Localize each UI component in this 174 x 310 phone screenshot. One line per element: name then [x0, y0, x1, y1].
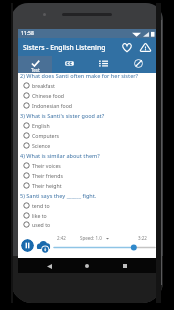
staticText: Speed: 1.0 — [80, 235, 102, 241]
button[interactable]: English — [18, 120, 156, 130]
staticText: 5) Santi says they ______ fight. — [20, 192, 97, 199]
staticText: Their height — [32, 182, 62, 189]
button[interactable]: Test — [18, 56, 52, 73]
button[interactable]: Favorite — [118, 38, 136, 56]
button[interactable]: Science — [18, 140, 156, 150]
button[interactable]: tend to — [18, 200, 156, 210]
staticText: 3:22 — [138, 235, 147, 241]
button[interactable]: Tab — [121, 56, 156, 73]
button[interactable]: Indonesian food — [18, 100, 156, 110]
staticText: like to — [32, 212, 47, 219]
staticText: Their voices — [32, 162, 61, 169]
button[interactable]: Back — [42, 259, 56, 273]
button[interactable]: Chinese food — [18, 90, 156, 100]
staticText: Indonesian food — [32, 102, 72, 109]
button[interactable]: Tab — [52, 56, 86, 73]
staticText: tend to — [32, 202, 50, 209]
staticText: used to — [32, 221, 51, 228]
button[interactable]: Their friends — [18, 170, 156, 180]
staticText: Chinese food — [32, 92, 64, 99]
staticText: 3) What is Santi's sister good at? — [20, 112, 105, 119]
button[interactable]: Their height — [18, 180, 156, 190]
staticText: Test — [31, 67, 40, 73]
staticText: Science — [32, 142, 51, 149]
button[interactable]: Speed: 1.0 — [80, 235, 109, 241]
button[interactable]: Their voices — [18, 160, 156, 170]
staticText: breakfast — [32, 82, 55, 89]
staticText: English — [32, 122, 50, 129]
staticText: 2) What does Santi often make for her si… — [20, 72, 139, 79]
button[interactable]: Computers — [18, 130, 156, 140]
button[interactable]: breakfast — [18, 80, 156, 90]
button[interactable]: Pause — [21, 239, 34, 252]
staticText: Computers — [32, 132, 60, 139]
button[interactable]: Report — [136, 38, 154, 56]
button[interactable]: Home — [80, 259, 94, 273]
button[interactable]: Download — [35, 238, 52, 255]
button[interactable]: used to — [18, 220, 156, 229]
staticText: 4) What is similar about them? — [20, 152, 100, 159]
staticText: 11:58 — [21, 30, 34, 37]
button[interactable]: like to — [18, 210, 156, 220]
staticText: Their friends — [32, 172, 63, 179]
staticText: 2:42 — [57, 235, 66, 241]
button[interactable]: Recents — [118, 259, 132, 273]
staticText: Sisters - English Listening — [23, 43, 106, 52]
button[interactable]: Tab — [86, 56, 121, 73]
